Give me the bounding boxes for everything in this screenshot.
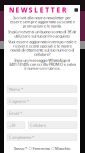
button[interactable]: Cellulare bbox=[28, 122, 77, 129]
staticText: Cellulare bbox=[30, 122, 46, 128]
staticText: Sesso * bbox=[14, 146, 27, 151]
staticText: Femmina bbox=[32, 146, 49, 151]
button[interactable]: Nome * bbox=[7, 86, 77, 93]
staticText: Invia un messaggio WhatsApp al 340173140… bbox=[8, 57, 75, 71]
staticText: Maschio bbox=[55, 146, 70, 151]
staticText: Cognome * bbox=[9, 98, 29, 104]
button[interactable]: Maschio bbox=[51, 146, 70, 151]
button[interactable]: Email * bbox=[7, 110, 77, 117]
staticText: Vuoi essere aggiornato in tempo reale e … bbox=[8, 39, 76, 57]
staticText: Compleanno * bbox=[9, 134, 34, 140]
button[interactable]: Femmina bbox=[29, 146, 49, 151]
staticText: Email * bbox=[9, 110, 22, 116]
staticText: Nome * bbox=[9, 86, 23, 92]
button[interactable]: Cognome * bbox=[7, 98, 77, 105]
staticText: +39 bbox=[9, 122, 15, 128]
staticText: Iscriviti alla nostra newsletter per ess… bbox=[9, 15, 74, 28]
button[interactable]: Compleanno * bbox=[7, 134, 77, 141]
staticText: NEWSLETTER bbox=[9, 6, 66, 14]
button[interactable]: Chiudi bbox=[74, 8, 78, 12]
button[interactable]: +39 bbox=[7, 122, 25, 129]
staticText: In più riceverai un buono sconto di 3€ d… bbox=[8, 29, 76, 38]
